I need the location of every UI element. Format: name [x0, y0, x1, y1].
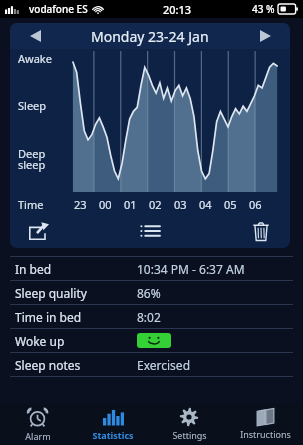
- staticText: Instructions: [240, 428, 291, 440]
- staticText: 05: [224, 197, 237, 212]
- button[interactable]: Share: [22, 214, 56, 248]
- staticText: Sleep notes: [15, 357, 81, 373]
- staticText: 01: [124, 197, 137, 212]
- staticText: Sleep: [18, 98, 47, 113]
- button[interactable]: Previous day: [22, 23, 48, 49]
- button[interactable]: Sleep notes: [10, 353, 293, 376]
- staticText: Time: [18, 197, 44, 212]
- staticText: 43 %: [252, 2, 275, 16]
- staticText: 04: [199, 197, 212, 212]
- button[interactable]: Statistics: [75, 403, 151, 445]
- staticText: 03: [174, 197, 187, 212]
- button[interactable]: Woke up: [10, 329, 293, 352]
- staticText: 8:02: [137, 309, 161, 325]
- staticText: In bed: [15, 261, 52, 277]
- staticText: Monday 23-24 Jan: [91, 27, 209, 46]
- staticText: Sleep quality: [15, 285, 87, 301]
- button[interactable]: Settings: [151, 403, 227, 445]
- button[interactable]: Next day: [252, 23, 278, 49]
- staticText: Time in bed: [15, 309, 82, 325]
- button[interactable]: In bed: [10, 257, 293, 280]
- staticText: Statistics: [92, 429, 134, 441]
- staticText: Deep sleep: [18, 146, 46, 173]
- staticText: Exercised: [137, 357, 191, 373]
- staticText: vodafone ES: [29, 2, 88, 16]
- staticText: 06: [249, 197, 262, 212]
- staticText: 00: [99, 197, 112, 212]
- staticText: 23: [74, 197, 87, 212]
- staticText: 02: [149, 197, 162, 212]
- button[interactable]: List: [133, 214, 167, 248]
- staticText: Awake: [18, 51, 52, 66]
- button[interactable]: Time in bed: [10, 305, 293, 328]
- staticText: 10:34 PM - 6:37 AM: [137, 261, 245, 277]
- button[interactable]: Delete: [244, 214, 278, 248]
- staticText: 20:13: [163, 2, 192, 17]
- button[interactable]: Instructions: [227, 403, 303, 445]
- staticText: 86%: [137, 285, 161, 301]
- staticText: Woke up: [15, 333, 65, 349]
- button[interactable]: Alarm: [0, 403, 75, 445]
- staticText: Settings: [172, 429, 207, 441]
- button[interactable]: Sleep quality: [10, 281, 293, 304]
- staticText: Alarm: [25, 430, 51, 442]
